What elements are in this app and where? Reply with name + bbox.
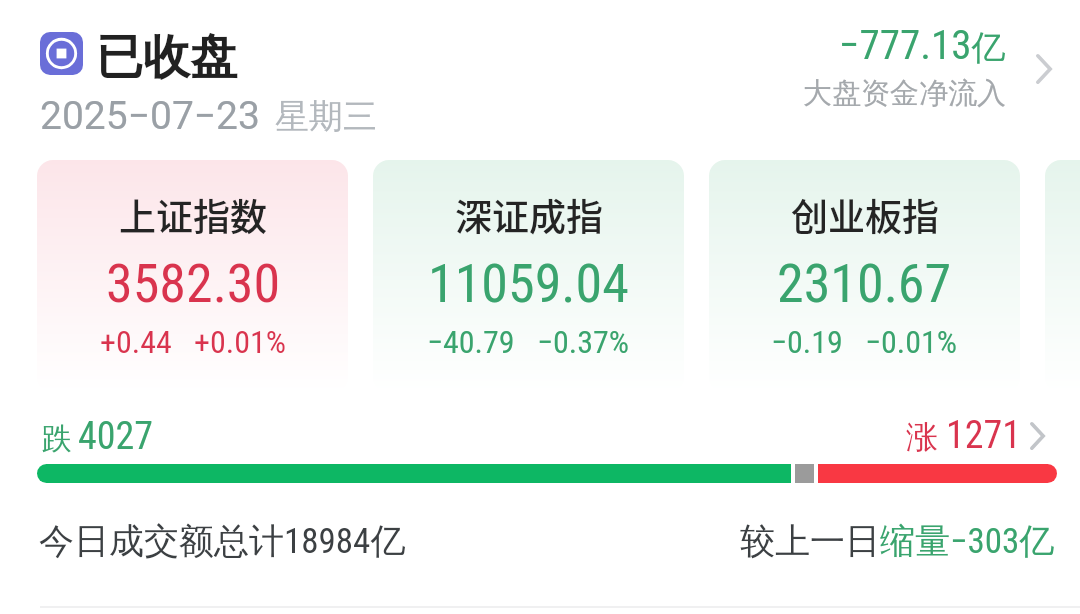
- staticText: −0.19: [771, 323, 843, 361]
- staticText: 今日成交额总计18984亿: [39, 519, 406, 563]
- staticText: 星期三: [275, 95, 377, 138]
- staticText: 已收盘: [96, 28, 237, 87]
- button[interactable]: 深证成指: [373, 160, 684, 392]
- staticText: 较上一日缩量−303亿: [740, 519, 1055, 563]
- staticText: 创业板指: [791, 188, 939, 242]
- other: Open capital flow detail: [1036, 54, 1052, 84]
- staticText: +0.01%: [194, 323, 286, 361]
- staticText: 深证成指: [455, 188, 603, 242]
- button[interactable]: 上证指数: [37, 160, 348, 392]
- staticText: +0.44: [100, 323, 172, 361]
- staticText: 上证指数: [119, 188, 267, 242]
- button[interactable]: −777.13亿: [739, 21, 1052, 112]
- staticText: 2310.67: [777, 252, 952, 315]
- staticText: 11059.04: [428, 252, 629, 315]
- staticText: 跌: [42, 420, 72, 458]
- other: Market closed: [40, 32, 83, 75]
- staticText: 1271: [946, 413, 1022, 458]
- button[interactable]: 2025−07−23: [40, 93, 377, 139]
- staticText: 4027: [78, 414, 154, 459]
- staticText: −40.79: [427, 323, 515, 361]
- staticText: 涨: [906, 417, 938, 457]
- staticText: −0.37%: [537, 323, 630, 361]
- button[interactable]: 跌: [42, 414, 154, 459]
- button[interactable]: 涨: [906, 413, 1045, 458]
- staticText: −0.01%: [865, 323, 958, 361]
- staticText: 2025−07−23: [40, 93, 260, 139]
- button[interactable]: Market closed: [40, 24, 237, 83]
- button[interactable]: [1045, 160, 1080, 392]
- other: Open market breadth: [1030, 422, 1045, 450]
- button[interactable]: 创业板指: [709, 160, 1020, 392]
- staticText: −777.13亿: [839, 21, 1006, 69]
- staticText: 大盘资金净流入: [803, 75, 1006, 112]
- staticText: 3582.30: [106, 252, 281, 315]
